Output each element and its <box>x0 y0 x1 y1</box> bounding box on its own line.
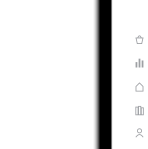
button[interactable]: Home <box>127 75 148 98</box>
button[interactable]: Shop <box>127 28 148 51</box>
button[interactable]: Profile <box>127 121 148 144</box>
button[interactable]: Statistics <box>127 51 148 74</box>
button[interactable]: Library <box>127 99 148 122</box>
